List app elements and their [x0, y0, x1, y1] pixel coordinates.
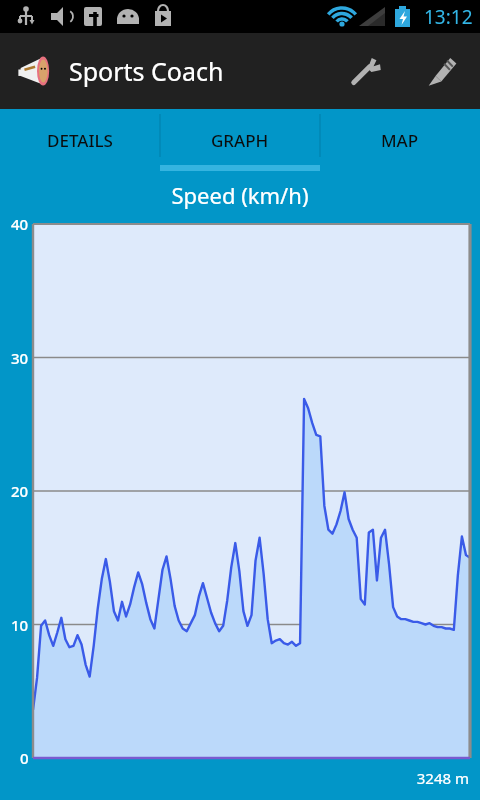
- staticText: 20: [11, 481, 29, 501]
- button[interactable]: DETAILS: [0, 109, 160, 171]
- staticText: 10: [11, 615, 29, 635]
- button[interactable]: MAP: [320, 109, 480, 171]
- staticText: 40: [11, 214, 29, 234]
- staticText: Speed (km/h): [0, 180, 480, 210]
- staticText: DETAILS: [47, 129, 113, 152]
- staticText: 3248 m: [0, 768, 469, 788]
- staticText: Sports Coach: [69, 54, 224, 88]
- staticText: 0: [20, 748, 29, 768]
- staticText: 30: [11, 348, 29, 368]
- staticText: MAP: [381, 129, 419, 152]
- button[interactable]: Edit: [404, 33, 480, 109]
- staticText: 13:12: [424, 4, 473, 30]
- button[interactable]: Settings: [328, 33, 404, 109]
- button[interactable]: GRAPH: [160, 109, 320, 171]
- staticText: GRAPH: [211, 129, 269, 152]
